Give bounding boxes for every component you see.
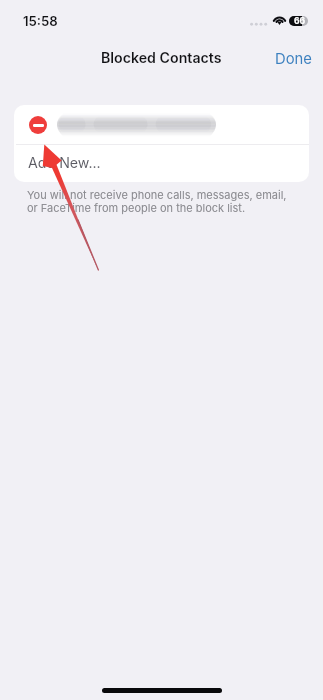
staticText: 66 xyxy=(294,16,306,26)
other: Remove blocked contact xyxy=(29,116,47,134)
button[interactable]: Remove blocked contact xyxy=(14,105,309,144)
staticText: Add New... xyxy=(28,154,101,171)
button[interactable]: Add New... xyxy=(14,145,309,182)
staticText: Done xyxy=(275,50,312,68)
staticText: 15:58 xyxy=(23,13,58,29)
staticText: You will not receive phone calls, messag… xyxy=(27,188,287,214)
staticText: Blocked Contacts xyxy=(101,49,222,66)
button[interactable]: Done xyxy=(262,41,323,77)
